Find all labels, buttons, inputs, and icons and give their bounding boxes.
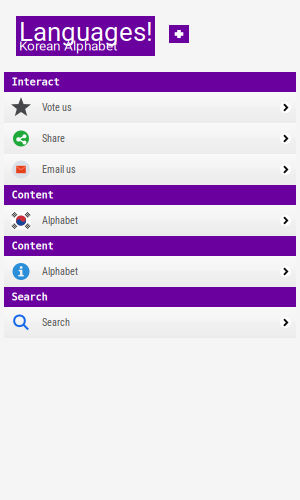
button[interactable]: Search bbox=[4, 307, 296, 338]
button[interactable]: Email us bbox=[4, 154, 296, 185]
button[interactable]: Add bbox=[169, 25, 189, 43]
staticText: Share bbox=[42, 133, 65, 144]
button[interactable]: Share bbox=[4, 123, 296, 154]
button[interactable]: Vote us bbox=[4, 92, 296, 123]
staticText: Korean Alphabet bbox=[19, 38, 117, 54]
staticText: Alphabet bbox=[42, 266, 78, 277]
staticText: Vote us bbox=[42, 102, 72, 113]
staticText: Search bbox=[42, 317, 70, 328]
staticText: Content bbox=[11, 240, 53, 252]
staticText: Email us bbox=[42, 164, 76, 175]
staticText: Languages! bbox=[19, 17, 153, 47]
staticText: Content bbox=[11, 189, 53, 201]
staticText: Alphabet bbox=[42, 215, 78, 226]
button[interactable]: Alphabet bbox=[4, 205, 296, 236]
staticText: Search bbox=[11, 291, 47, 303]
button[interactable]: Alphabet bbox=[4, 256, 296, 287]
staticText: Interact bbox=[11, 76, 59, 88]
